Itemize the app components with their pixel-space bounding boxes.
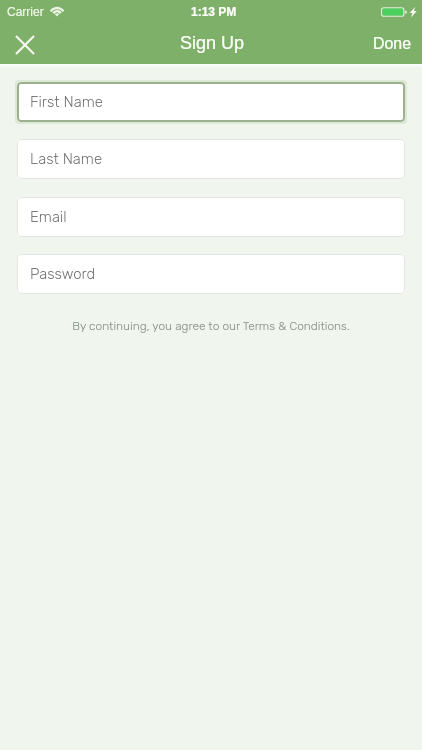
staticText: Sign Up <box>180 33 245 53</box>
button[interactable]: First Name <box>17 82 405 122</box>
staticText: By continuing, you agree to our Terms & … <box>0 319 422 333</box>
button[interactable]: Password <box>17 254 405 294</box>
staticText: Carrier <box>7 5 44 18</box>
staticText: First Name <box>30 93 103 111</box>
button[interactable]: Last Name <box>17 139 405 179</box>
button[interactable]: Email <box>17 197 405 237</box>
staticText: 1:13 PM <box>191 5 237 18</box>
staticText: Password <box>30 265 96 283</box>
staticText: Done <box>373 35 411 53</box>
button[interactable]: Close <box>6 26 43 63</box>
staticText: Email <box>30 208 67 226</box>
button[interactable]: Done <box>357 26 422 62</box>
staticText: Last Name <box>30 150 103 168</box>
